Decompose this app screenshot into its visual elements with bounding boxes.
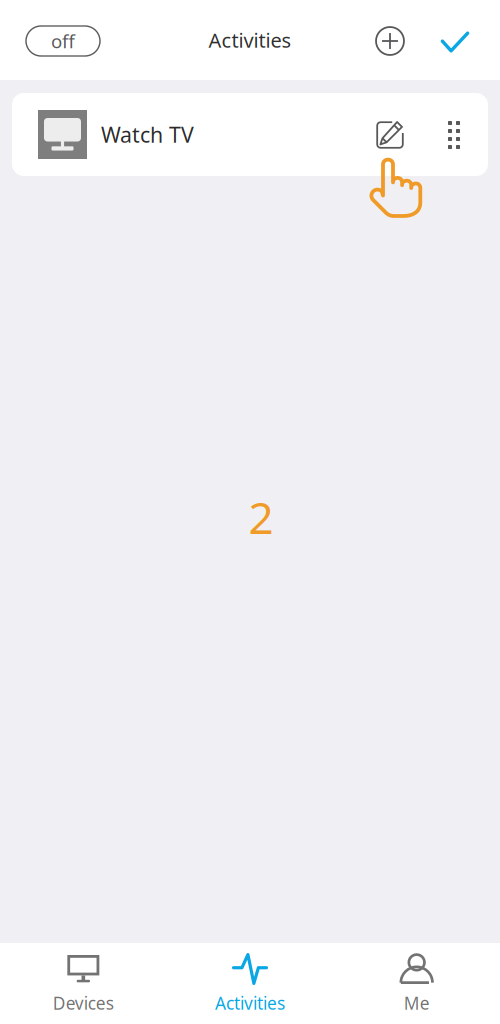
button[interactable]: off xyxy=(26,26,100,56)
staticText: Devices xyxy=(53,991,114,1014)
staticText: off xyxy=(51,29,75,53)
staticText: Activities xyxy=(215,991,285,1014)
button[interactable]: Me xyxy=(333,943,500,1024)
staticText: 2 xyxy=(248,488,273,546)
button[interactable]: Done xyxy=(433,20,477,64)
staticText: Activities xyxy=(208,27,291,53)
button[interactable]: Activities xyxy=(167,943,333,1024)
button[interactable]: Reorder activity xyxy=(434,113,474,157)
staticText: Watch TV xyxy=(101,120,194,149)
button[interactable]: Add activity xyxy=(368,19,412,63)
button[interactable]: Watch TV xyxy=(12,93,488,176)
button[interactable]: Edit activity xyxy=(368,113,412,157)
button[interactable]: Devices xyxy=(0,943,167,1024)
staticText: Me xyxy=(404,991,430,1014)
